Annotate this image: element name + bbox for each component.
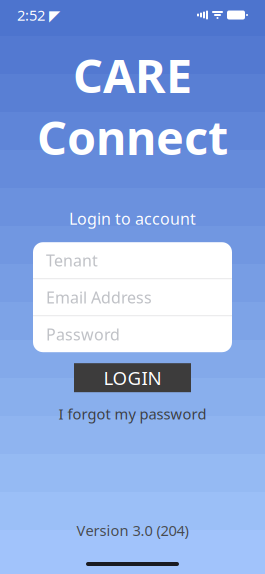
staticText: Version 3.0 (204) [76,520,188,540]
staticText: 2:52 ◤ [17,5,60,25]
staticText: I forgot my password [58,404,206,424]
staticText: Tenant [46,250,98,271]
staticText: Email Address [46,287,152,308]
staticText: Login to account [69,208,196,229]
staticText: Password [46,324,120,345]
staticText: Connect [37,106,228,168]
staticText: CARE [73,44,192,106]
button[interactable]: LOGIN [74,363,191,392]
button[interactable]: I forgot my password [50,400,214,428]
staticText: LOGIN [103,365,161,390]
